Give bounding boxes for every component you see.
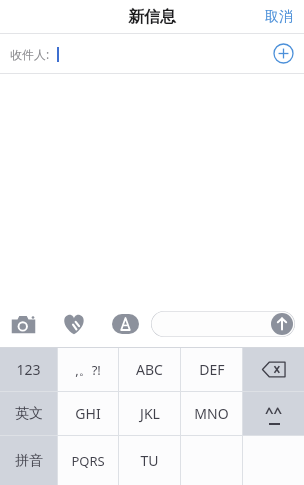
button[interactable]: TU xyxy=(119,436,180,485)
staticText: ABC xyxy=(136,360,163,379)
button[interactable]: PQRS xyxy=(58,436,118,485)
button[interactable]: DEF xyxy=(181,348,242,391)
staticText: PQRS xyxy=(71,452,105,470)
button[interactable]: App Store xyxy=(110,309,140,339)
staticText: TU xyxy=(140,451,159,470)
button[interactable]: Add contact xyxy=(273,43,294,64)
button[interactable]: 收件人: xyxy=(0,34,304,73)
button[interactable]: MNO xyxy=(181,392,242,435)
button[interactable]: Digital Touch xyxy=(59,309,89,339)
staticText: ,。?! xyxy=(75,361,101,379)
button[interactable]: 取消 xyxy=(260,3,298,31)
button[interactable]: Send xyxy=(151,311,295,337)
staticText: GHI xyxy=(75,404,101,423)
staticText: 新信息 xyxy=(128,7,176,27)
staticText: 123 xyxy=(16,360,41,379)
staticText: JKL xyxy=(140,404,160,423)
button[interactable]: 英文 xyxy=(0,392,57,435)
staticText: 英文 xyxy=(15,405,43,423)
staticText: DEF xyxy=(199,360,225,379)
button[interactable]: GHI xyxy=(58,392,118,435)
button[interactable]: ABC xyxy=(119,348,180,391)
button[interactable]: 拼音 xyxy=(0,436,57,485)
button[interactable]: ^^ xyxy=(243,392,304,435)
button[interactable]: ,。?! xyxy=(58,348,118,391)
button[interactable]: Backspace xyxy=(243,348,304,391)
button[interactable]: Send xyxy=(271,313,293,335)
staticText: 取消 xyxy=(265,8,293,26)
staticText: ^^ xyxy=(265,402,283,422)
staticText: 拼音 xyxy=(15,452,43,470)
button[interactable]: 123 xyxy=(0,348,57,391)
button[interactable]: JKL xyxy=(119,392,180,435)
staticText: MNO xyxy=(194,404,229,423)
staticText: 收件人: xyxy=(10,46,50,62)
button[interactable]: Camera xyxy=(8,309,38,339)
